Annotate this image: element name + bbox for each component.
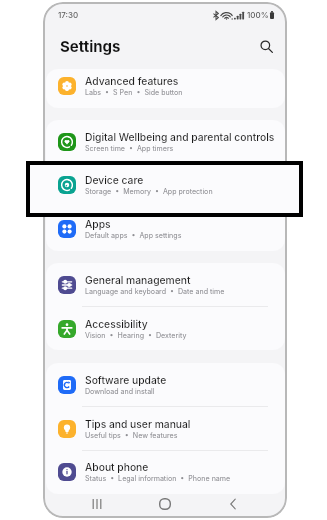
- staticText: Settings: [60, 37, 121, 55]
- button[interactable]: Advanced features: [46, 69, 285, 105]
- staticText: General management: [85, 274, 191, 286]
- button[interactable]: Device care: [46, 163, 285, 207]
- staticText: Screen time • App timers: [85, 144, 174, 153]
- staticText: Device care: [85, 174, 144, 186]
- staticText: Language and keyboard • Date and time: [85, 287, 225, 296]
- staticText: Labs • S Pen • Side button: [85, 88, 183, 97]
- staticText: Storage • Memory • App protection: [85, 187, 213, 196]
- staticText: Useful tips • New features: [85, 431, 178, 440]
- staticText: About phone: [85, 461, 149, 473]
- staticText: Device care: [85, 175, 144, 187]
- staticText: Storage • Memory • App protection: [85, 188, 213, 197]
- button[interactable]: General management: [46, 263, 285, 307]
- staticText: Software update: [85, 374, 167, 386]
- button[interactable]: Recent apps: [83, 490, 111, 518]
- button[interactable]: Back: [219, 490, 247, 518]
- staticText: Tips and user manual: [85, 418, 191, 430]
- staticText: Vision • Hearing • Dexterity: [85, 331, 187, 340]
- staticText: 100%: [247, 10, 269, 20]
- staticText: Default apps • App settings: [85, 231, 182, 240]
- button[interactable]: Digital Wellbeing and parental controls: [46, 120, 285, 164]
- staticText: 17:30: [58, 10, 79, 20]
- staticText: Advanced features: [85, 75, 179, 87]
- button[interactable]: Apps: [46, 207, 285, 251]
- staticText: Digital Wellbeing and parental controls: [85, 131, 275, 143]
- staticText: Status • Legal information • Phone name: [85, 474, 231, 483]
- button[interactable]: Home: [151, 490, 179, 518]
- button[interactable]: Tips and user manual: [46, 407, 285, 451]
- button[interactable]: Accessibility: [46, 307, 285, 350]
- button[interactable]: Device care: [46, 164, 285, 208]
- button[interactable]: Search: [255, 35, 277, 57]
- button[interactable]: Software update: [46, 363, 285, 407]
- staticText: Download and install: [85, 387, 155, 396]
- button[interactable]: About phone: [46, 450, 285, 494]
- staticText: Accessibility: [85, 318, 148, 330]
- staticText: Apps: [85, 218, 111, 230]
